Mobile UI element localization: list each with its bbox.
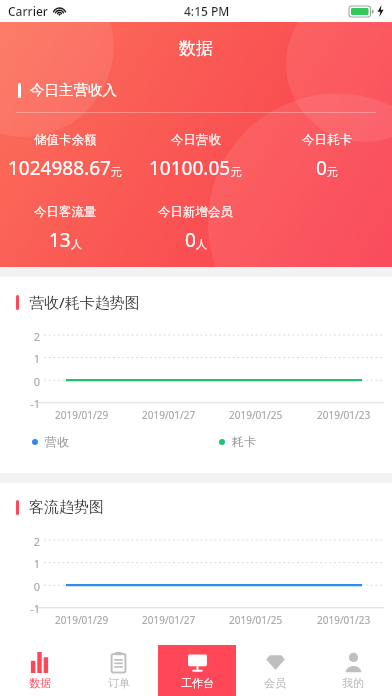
staticText: 客流趋势图 xyxy=(29,498,104,517)
staticText: 2019/01/27 xyxy=(142,613,196,627)
staticText: 2 xyxy=(33,534,40,549)
button[interactable]: 今日新增会员 xyxy=(130,204,261,253)
button[interactable]: 今日客流量 xyxy=(0,204,130,253)
staticText: 今日主营收入 xyxy=(30,81,117,99)
other: 订单 xyxy=(108,652,129,673)
staticText: 0 xyxy=(316,155,327,181)
staticText: 数据 xyxy=(179,38,213,59)
staticText: 订单 xyxy=(108,676,130,690)
staticText: 营收/耗卡趋势图 xyxy=(29,292,140,312)
staticText: 工作台 xyxy=(181,676,214,690)
staticText: 2019/01/25 xyxy=(229,613,283,627)
staticText: 13 xyxy=(49,227,71,253)
staticText: 元 xyxy=(111,165,122,179)
other: 会员 xyxy=(265,652,286,673)
staticText: 今日客流量 xyxy=(34,204,97,220)
staticText: 4:15 PM xyxy=(184,3,230,19)
staticText: 1 xyxy=(33,556,40,571)
staticText: 元 xyxy=(231,165,242,179)
staticText: 人 xyxy=(196,237,207,251)
staticText: 今日营收 xyxy=(171,132,221,148)
button[interactable]: 今日耗卡 xyxy=(261,132,392,181)
staticText: 1 xyxy=(33,351,40,366)
staticText: 今日新增会员 xyxy=(158,204,233,220)
staticText: 会员 xyxy=(264,676,286,690)
staticText: 2019/01/27 xyxy=(142,408,196,422)
other: 我的 xyxy=(343,652,364,673)
staticText: 2019/01/29 xyxy=(55,613,109,627)
staticText: 2019/01/23 xyxy=(317,613,371,627)
staticText: 0 xyxy=(33,579,40,594)
other: 工作台 xyxy=(187,652,208,673)
button[interactable]: 工作台 xyxy=(158,645,236,696)
staticText: -1 xyxy=(30,396,40,411)
button[interactable]: 我的 xyxy=(314,645,392,696)
staticText: 耗卡 xyxy=(232,434,256,449)
button[interactable]: 数据 xyxy=(0,645,79,696)
staticText: 今日耗卡 xyxy=(302,132,352,148)
staticText: 2019/01/23 xyxy=(317,408,371,422)
button[interactable]: 订单 xyxy=(79,645,158,696)
staticText: 我的 xyxy=(342,676,364,690)
staticText: 1024988.67 xyxy=(8,155,111,181)
staticText: 元 xyxy=(327,165,338,179)
staticText: 2019/01/25 xyxy=(229,408,283,422)
staticText: 2 xyxy=(33,329,40,344)
staticText: 2019/01/29 xyxy=(55,408,109,422)
staticText: Carrier xyxy=(8,3,48,19)
button[interactable]: 今日营收 xyxy=(130,132,261,181)
staticText: 数据 xyxy=(29,676,51,690)
staticText: 0 xyxy=(185,227,196,253)
staticText: 10100.05 xyxy=(149,155,231,181)
staticText: -1 xyxy=(30,601,40,616)
staticText: 营收 xyxy=(45,434,69,449)
staticText: 0 xyxy=(33,374,40,389)
staticText: 储值卡余额 xyxy=(34,132,97,148)
other: 数据 xyxy=(29,652,50,673)
staticText: 人 xyxy=(71,237,82,251)
button[interactable]: 储值卡余额 xyxy=(0,132,130,181)
button[interactable]: 会员 xyxy=(236,645,314,696)
